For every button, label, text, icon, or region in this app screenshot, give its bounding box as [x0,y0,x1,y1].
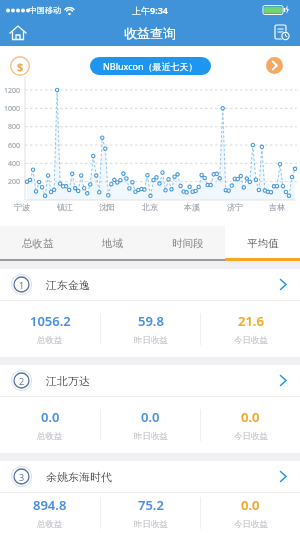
staticText: 昨日收益 [134,335,168,346]
staticText: 总收益 [37,335,63,346]
button[interactable]: 1 [0,269,300,300]
button[interactable]: 总收益 [0,226,75,261]
staticText: 今日收益 [234,335,268,346]
button[interactable]: NBluxcon（最近七天） [90,57,211,75]
staticText: 宁波 [7,202,37,212]
staticText: 800 [0,122,20,132]
staticText: 北京 [135,202,165,212]
staticText: 1 [19,279,25,291]
staticText: 1056.2 [30,312,71,330]
staticText: 59.8 [138,312,164,330]
staticText: 21.6 [238,312,264,330]
staticText: 江北万达 [46,374,90,388]
button[interactable]: 894.8 [0,493,100,533]
staticText: 0.0 [141,408,160,426]
staticText: 沈阳 [92,202,122,212]
button[interactable] [8,23,28,43]
button[interactable]: 时间段 [150,226,225,261]
staticText: 本溪 [177,202,207,212]
staticText: 今日收益 [234,431,268,442]
button[interactable] [272,23,292,43]
button[interactable]: 21.6 [201,301,300,357]
staticText: 平均值 [247,237,279,250]
staticText: 1000 [0,104,20,114]
staticText: 75.2 [138,496,164,514]
staticText: 3 [19,471,25,483]
staticText: 今日收益 [234,519,268,530]
staticText: 昨日收益 [134,431,168,442]
staticText: 上午9:34 [132,4,168,16]
staticText: 镇江 [50,202,80,212]
button[interactable]: 3 [0,461,300,492]
staticText: $ [17,59,24,74]
staticText: 地域 [102,237,123,250]
button[interactable]: 2 [0,365,300,396]
staticText: 200 [0,177,20,187]
staticText: NBluxcon（最近七天） [103,60,198,72]
staticText: 总收益 [37,519,63,530]
staticText: 总收益 [37,431,63,442]
staticText: 江东金逸 [46,278,90,292]
button[interactable] [266,57,283,74]
button[interactable]: 0.0 [0,397,100,453]
staticText: 济宁 [220,202,250,212]
button[interactable]: 75.2 [101,493,200,533]
staticText: 中国移动 [29,5,61,15]
button[interactable]: 地域 [75,226,150,261]
staticText: 0.0 [41,408,60,426]
button[interactable]: $ [10,56,30,76]
staticText: 吉林 [262,202,292,212]
button[interactable]: 0.0 [101,397,200,453]
button[interactable]: 1056.2 [0,301,100,357]
staticText: 余姚东海时代 [46,470,112,484]
staticText: 2 [19,375,25,387]
staticText: 1200 [0,86,20,96]
staticText: 894.8 [33,496,67,514]
button[interactable]: 0.0 [201,397,300,453]
button[interactable]: 平均值 [225,226,300,261]
staticText: 收益查询 [124,25,176,41]
staticText: 400 [0,159,20,169]
staticText: 600 [0,141,20,151]
staticText: 0.0 [241,496,260,514]
button[interactable]: 0.0 [201,493,300,533]
staticText: 时间段 [172,237,204,250]
staticText: 0.0 [241,408,260,426]
staticText: 总收益 [22,237,54,250]
button[interactable]: 59.8 [101,301,200,357]
staticText: 昨日收益 [134,519,168,530]
